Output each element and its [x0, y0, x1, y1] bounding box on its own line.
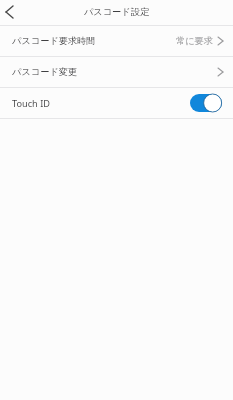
button[interactable]: Back — [0, 0, 19, 24]
staticText: Touch ID — [12, 97, 50, 110]
staticText: パスコード設定 — [0, 6, 233, 18]
staticText: パスコード変更 — [12, 66, 78, 78]
staticText: パスコード要求時間 — [12, 35, 96, 47]
button[interactable]: パスコード要求時間 — [0, 26, 233, 56]
staticText: 常に要求 — [176, 35, 213, 47]
button[interactable]: パスコード変更 — [0, 57, 233, 87]
button[interactable]: Touch ID — [190, 94, 222, 112]
